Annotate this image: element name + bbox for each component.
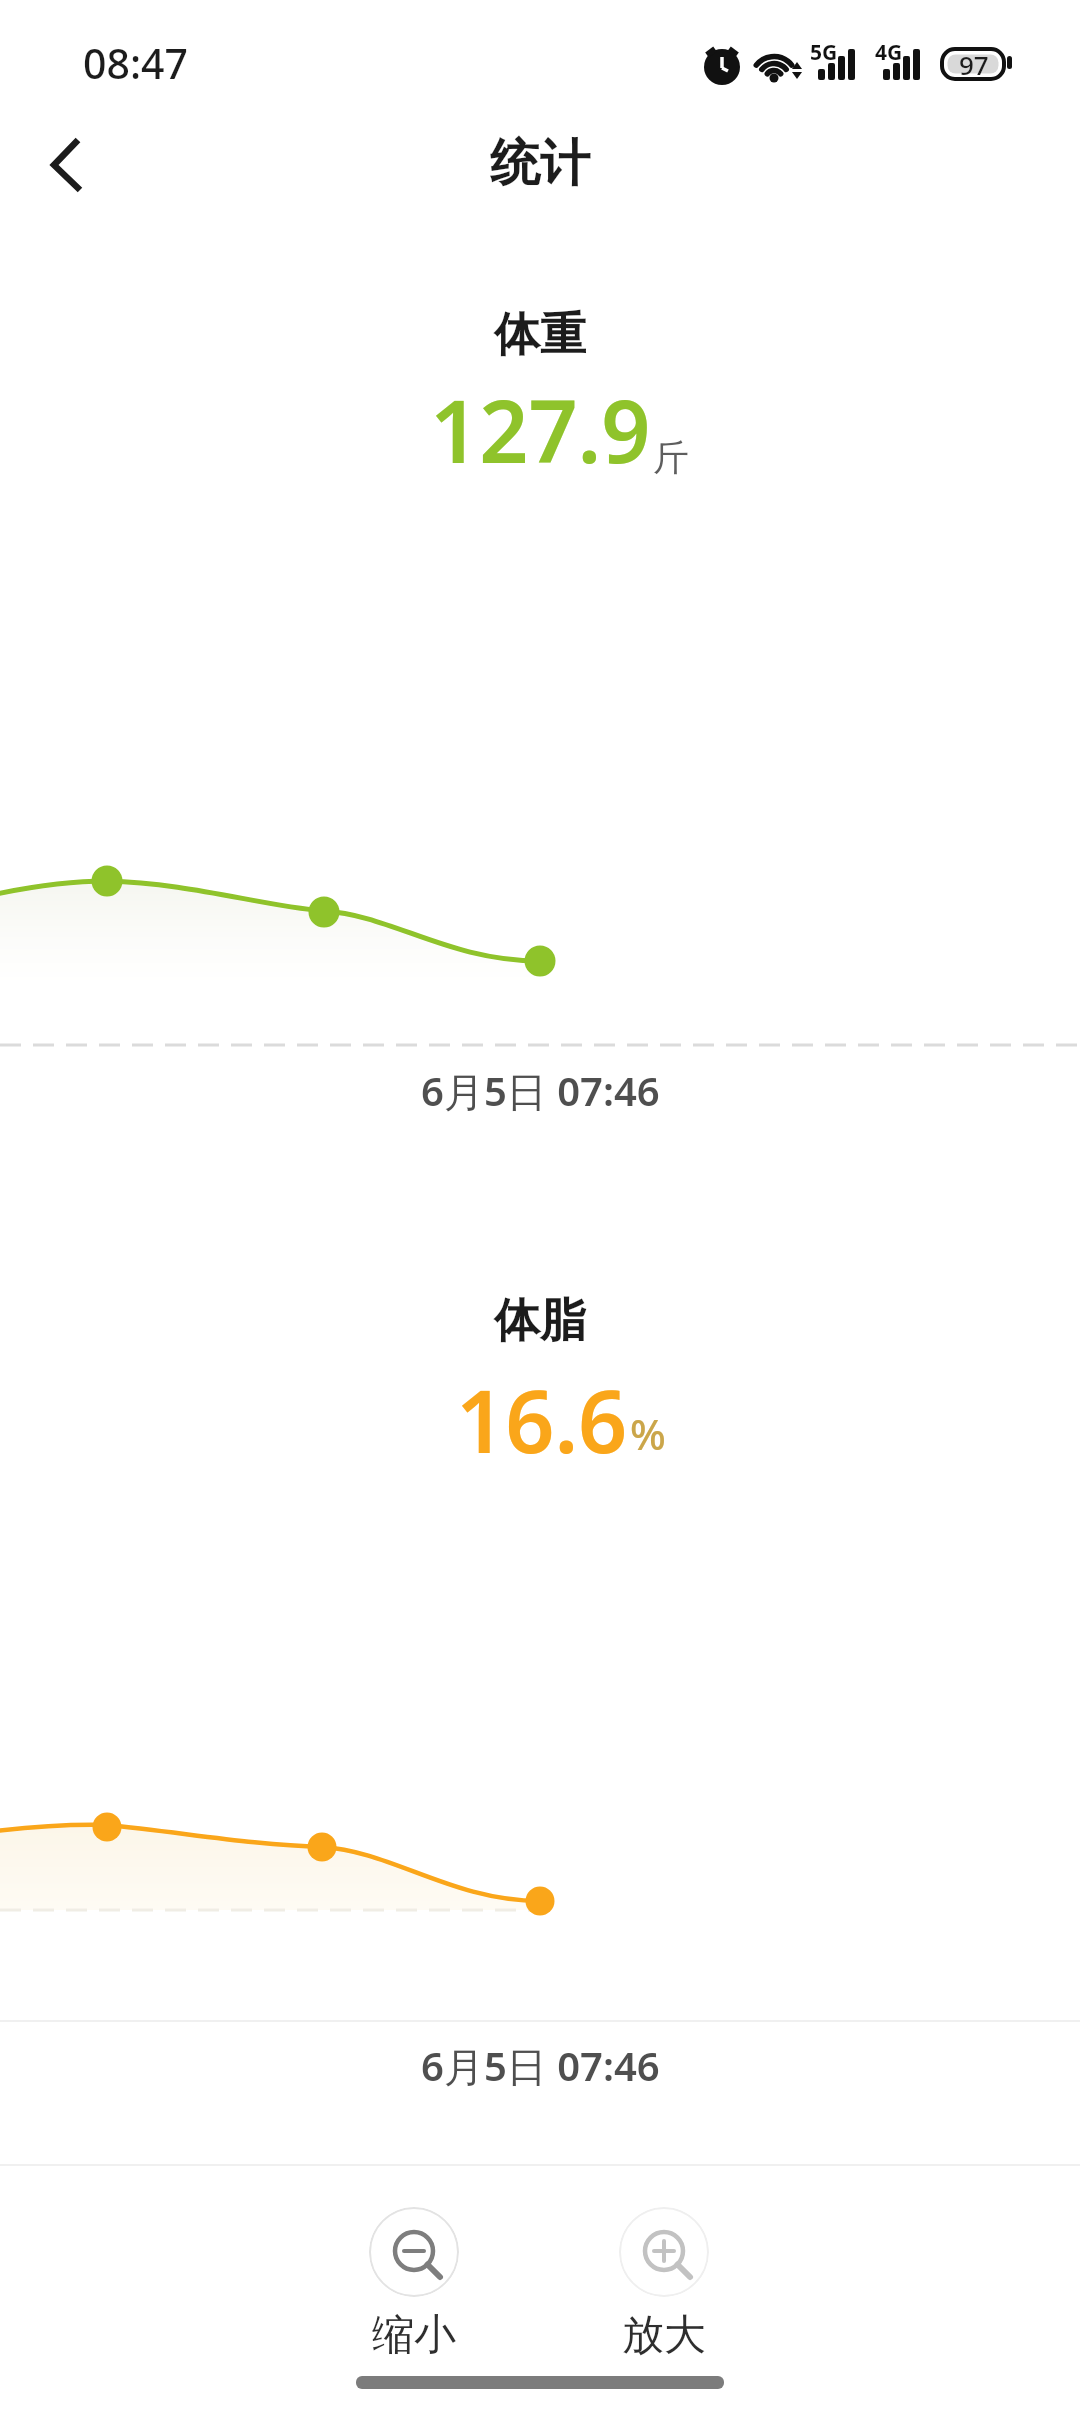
staticText: 斤: [653, 435, 689, 480]
staticText: 6月5日 07:46: [421, 1063, 660, 1118]
staticText: 16.6: [456, 1361, 628, 1478]
staticText: 6月5日 07:46: [421, 2038, 660, 2093]
staticText: 5G: [810, 38, 838, 67]
staticText: 缩小: [372, 2309, 456, 2362]
staticText: 体脂: [494, 1292, 586, 1350]
staticText: %: [630, 1405, 666, 1462]
staticText: 97: [959, 47, 989, 82]
staticText: 统计: [490, 132, 590, 195]
button[interactable]: 缩小: [344, 2207, 484, 2362]
staticText: 放大: [622, 2309, 706, 2362]
button[interactable]: 放大: [594, 2207, 734, 2362]
staticText: 4G: [875, 38, 903, 67]
staticText: 127.9: [430, 371, 651, 488]
staticText: 08:47: [83, 35, 188, 91]
button[interactable]: [36, 120, 116, 204]
staticText: 体重: [494, 306, 586, 364]
